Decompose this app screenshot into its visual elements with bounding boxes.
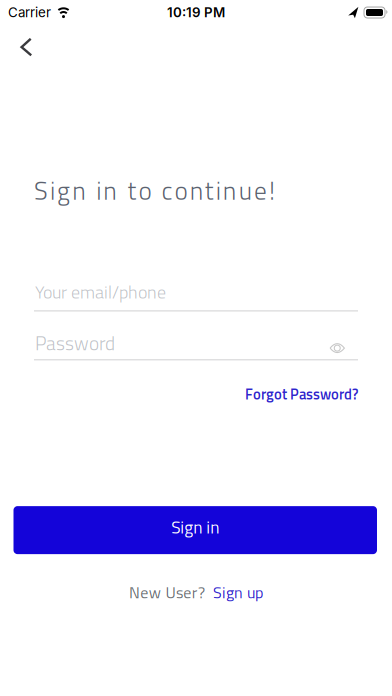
staticText: New User?: [129, 580, 205, 604]
staticText: Password: [35, 328, 115, 358]
button[interactable]: Sign up: [213, 580, 263, 604]
button[interactable]: [13, 30, 39, 63]
staticText: Sign up: [213, 580, 263, 604]
staticText: Sign in: [171, 514, 219, 540]
staticText: Carrier: [8, 5, 51, 20]
staticText: 10:19 PM: [167, 5, 225, 20]
staticText: Forgot Password?: [245, 383, 358, 405]
button[interactable]: Sign in: [13, 506, 377, 554]
staticText: Your email/phone: [35, 278, 166, 305]
button[interactable]: Forgot Password?: [245, 383, 358, 405]
button[interactable]: [324, 333, 350, 353]
staticText: Sign in to continue!: [34, 171, 275, 209]
